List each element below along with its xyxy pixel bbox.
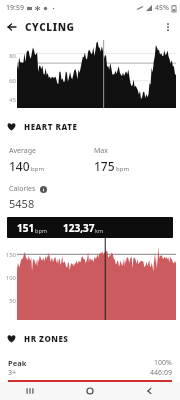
button[interactable]: Recents (0, 382, 60, 400)
staticText: Calories (9, 184, 36, 194)
staticText: 3+ (8, 368, 17, 378)
staticText: 100% (154, 358, 172, 368)
staticText: 45 (3, 96, 16, 104)
staticText: 151 (17, 221, 35, 235)
staticText: HR ZONES (24, 333, 69, 344)
staticText: Max (94, 146, 108, 156)
staticText: 60 (3, 77, 16, 85)
staticText: 50 (3, 297, 16, 305)
staticText: 140 (9, 158, 30, 174)
button[interactable]: Back (3, 18, 21, 36)
staticText: 19:59 (6, 3, 24, 13)
button[interactable]: Back (120, 382, 180, 400)
staticText: CYCLING (25, 20, 75, 34)
staticText: Average (9, 146, 36, 156)
staticText: Peak (8, 358, 27, 368)
staticText: bpm (31, 165, 44, 173)
staticText: 100 (3, 274, 16, 282)
button[interactable]: More options (159, 18, 177, 36)
button[interactable]: Home (60, 382, 120, 400)
staticText: 5458 (9, 196, 35, 211)
staticText: 175 (94, 158, 115, 174)
staticText: HEART RATE (24, 121, 78, 132)
staticText: 446:09 (150, 368, 172, 378)
button[interactable]: HEART RATE (0, 116, 180, 136)
staticText: 123,37 (63, 221, 95, 235)
staticText: bpm (35, 227, 47, 234)
staticText: 80 (3, 52, 16, 60)
staticText: 45% (155, 3, 169, 13)
button[interactable]: Calories info (39, 185, 47, 193)
staticText: bpm (116, 165, 129, 173)
button[interactable]: Peak (0, 358, 180, 382)
button[interactable]: HR ZONES (0, 328, 180, 348)
staticText: 150 (3, 251, 16, 259)
staticText: km (95, 227, 104, 234)
